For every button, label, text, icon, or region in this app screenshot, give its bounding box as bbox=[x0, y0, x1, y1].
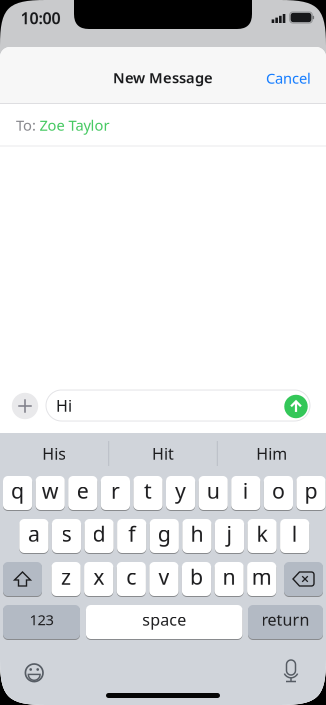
button[interactable]: w bbox=[36, 475, 65, 511]
button[interactable]: e bbox=[68, 475, 97, 511]
button[interactable]: f bbox=[117, 518, 146, 554]
staticText: f bbox=[128, 519, 135, 548]
button[interactable]: Hi bbox=[46, 390, 310, 421]
staticText: n bbox=[223, 562, 236, 591]
staticText: d bbox=[93, 519, 106, 548]
staticText: Hi bbox=[56, 395, 72, 416]
button[interactable]: Send bbox=[284, 395, 308, 418]
staticText: p bbox=[304, 476, 317, 505]
staticText: t bbox=[144, 476, 152, 505]
button[interactable]: m bbox=[247, 561, 276, 597]
staticText: i bbox=[243, 476, 249, 505]
button[interactable]: h bbox=[182, 518, 211, 554]
staticText: l bbox=[292, 519, 298, 548]
button[interactable]: His bbox=[4, 435, 104, 471]
button[interactable]: s bbox=[52, 518, 81, 554]
button[interactable]: o bbox=[264, 475, 293, 511]
staticText: m bbox=[252, 562, 272, 591]
staticText: Cancel bbox=[266, 68, 311, 88]
button[interactable]: 123 bbox=[3, 604, 80, 640]
button[interactable]: g bbox=[150, 518, 179, 554]
button[interactable]: z bbox=[51, 561, 81, 597]
staticText: return bbox=[261, 609, 309, 630]
staticText: His bbox=[42, 443, 66, 464]
staticText: b bbox=[190, 562, 203, 591]
button[interactable]: x bbox=[84, 561, 113, 597]
button[interactable]: r bbox=[101, 475, 130, 511]
staticText: e bbox=[77, 476, 89, 505]
staticText: space bbox=[142, 609, 186, 630]
button[interactable]: To: bbox=[0, 104, 326, 146]
button[interactable]: j bbox=[215, 518, 244, 554]
button[interactable]: p bbox=[296, 475, 326, 511]
staticText: 10:00 bbox=[20, 7, 60, 29]
button[interactable]: n bbox=[214, 561, 244, 597]
button[interactable]: Emoji bbox=[22, 661, 46, 685]
staticText: r bbox=[111, 476, 120, 505]
staticText: g bbox=[158, 519, 171, 548]
staticText: New Message bbox=[113, 68, 213, 87]
button[interactable]: k bbox=[247, 518, 277, 554]
staticText: 123 bbox=[29, 610, 53, 629]
staticText: q bbox=[11, 476, 24, 505]
button[interactable]: c bbox=[117, 561, 146, 597]
button[interactable]: space bbox=[86, 604, 242, 640]
staticText: Hit bbox=[152, 443, 174, 464]
button[interactable]: v bbox=[149, 561, 178, 597]
staticText: o bbox=[272, 476, 285, 505]
staticText: h bbox=[190, 519, 203, 548]
staticText: w bbox=[42, 476, 59, 505]
button[interactable]: i bbox=[231, 475, 260, 511]
button[interactable]: return bbox=[248, 604, 323, 640]
button[interactable]: Him bbox=[222, 435, 322, 471]
staticText: To: bbox=[16, 115, 36, 135]
button[interactable]: l bbox=[280, 518, 309, 554]
staticText: z bbox=[61, 562, 71, 591]
button[interactable]: Cancel bbox=[216, 58, 326, 98]
staticText: v bbox=[158, 562, 169, 591]
staticText: k bbox=[257, 519, 268, 548]
button[interactable]: t bbox=[133, 475, 163, 511]
staticText: y bbox=[175, 476, 186, 505]
button[interactable]: Shift bbox=[3, 561, 42, 597]
staticText: x bbox=[93, 562, 104, 591]
button[interactable]: a bbox=[19, 518, 48, 554]
staticText: Zoe Taylor bbox=[39, 115, 109, 135]
staticText: a bbox=[28, 519, 40, 548]
button[interactable]: u bbox=[199, 475, 228, 511]
button[interactable]: b bbox=[182, 561, 211, 597]
staticText: j bbox=[226, 519, 232, 548]
button[interactable]: d bbox=[84, 518, 114, 554]
button[interactable]: Dictation bbox=[282, 660, 300, 684]
staticText: s bbox=[61, 519, 71, 548]
button[interactable]: Add attachment bbox=[12, 393, 38, 419]
staticText: u bbox=[207, 476, 220, 505]
button[interactable]: q bbox=[3, 475, 32, 511]
button[interactable]: Hit bbox=[113, 435, 213, 471]
staticText: Him bbox=[256, 443, 287, 464]
button[interactable]: Delete bbox=[284, 561, 323, 597]
button[interactable]: y bbox=[166, 475, 195, 511]
staticText: c bbox=[126, 562, 136, 591]
